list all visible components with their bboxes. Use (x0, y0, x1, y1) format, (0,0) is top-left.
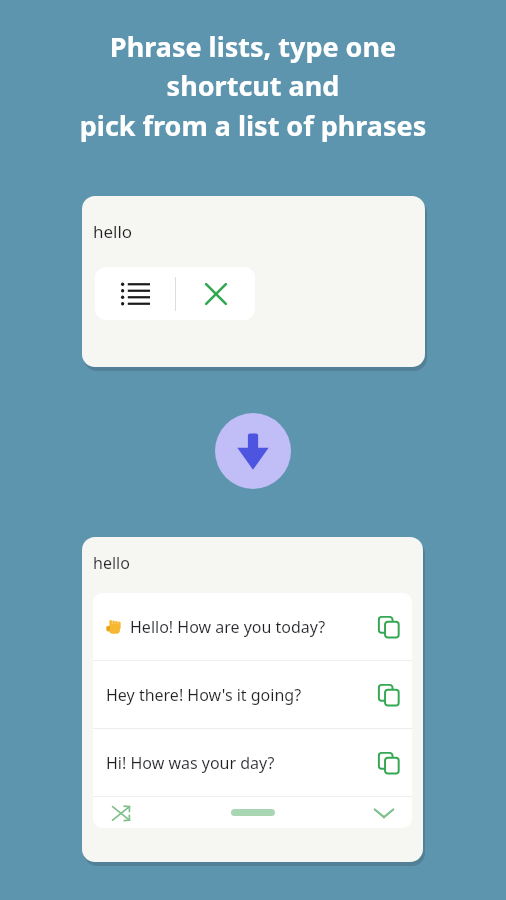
button[interactable]: Copy (366, 729, 412, 796)
staticText: hello (93, 220, 133, 243)
staticText: Hello! How are you today? (130, 616, 366, 638)
staticText: Phrase lists, type one shortcut and pick… (16, 28, 490, 144)
button[interactable]: Hi! How was your day? (93, 729, 412, 796)
button[interactable]: Down arrow (215, 413, 291, 489)
button[interactable]: Hello! How are you today? (93, 593, 412, 660)
staticText: hello (93, 552, 130, 574)
staticText: Hi! How was your day? (106, 752, 366, 774)
button[interactable]: Copy (366, 593, 412, 660)
button[interactable]: Phrase list (95, 267, 175, 320)
staticText: Hey there! How's it going? (106, 684, 366, 706)
button[interactable]: Collapse (356, 797, 412, 828)
button[interactable]: Hey there! How's it going? (93, 661, 412, 728)
button[interactable]: Close (176, 267, 255, 320)
button[interactable]: Shuffle (93, 797, 149, 828)
button[interactable]: Copy (366, 661, 412, 728)
